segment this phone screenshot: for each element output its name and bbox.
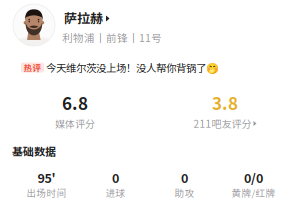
staticText: 3.8 [212,90,238,115]
staticText: 进球 [105,186,125,199]
staticText: 基础数据 [12,143,56,159]
staticText: 211吧友评分 [193,116,251,131]
staticText: 出场时间 [26,186,66,199]
staticText: 0 [181,168,188,187]
staticText: 媒体评分 [55,116,95,131]
button[interactable]: 萨拉赫 [0,0,285,50]
staticText: 利物浦丨前锋丨11号 [62,30,162,45]
staticText: 助攻 [174,186,194,199]
staticText: 热评 [23,61,41,74]
staticText: 6.8 [62,90,88,115]
staticText: 95' [37,168,55,187]
staticText: 0 [112,168,119,187]
staticText: 萨拉赫 [64,8,103,27]
staticText: 0/0 [244,168,263,187]
staticText: 黄牌/红牌 [231,186,275,199]
staticText: 今天维尔茨没上场！没人帮你背锅了🤭 [46,60,219,75]
button[interactable]: 3.8 [150,96,300,129]
